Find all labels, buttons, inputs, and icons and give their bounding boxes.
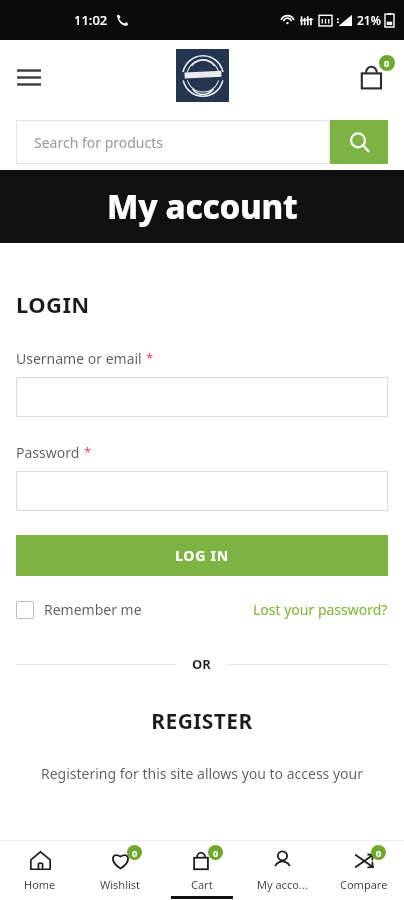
staticText: 0 (132, 847, 138, 859)
staticText: * (146, 349, 154, 367)
staticText: LOG IN (175, 546, 230, 565)
button[interactable]: Search for products (16, 120, 330, 164)
staticText: 0 (376, 847, 382, 859)
button[interactable]: My acco... (242, 841, 323, 900)
staticText: REGISTER (16, 707, 388, 736)
button[interactable]: Lost your password? (253, 598, 388, 621)
staticText: LOGIN (16, 289, 90, 319)
staticText: 21% (357, 12, 381, 28)
staticText: Wishlist (100, 877, 141, 892)
button[interactable]: Super Stores logo (176, 49, 229, 102)
staticText: Search for products (34, 133, 163, 152)
staticText: Password (16, 443, 80, 462)
staticText: OR (192, 655, 211, 673)
button[interactable]: 0 (80, 841, 161, 900)
button[interactable]: Cart (352, 57, 392, 97)
button[interactable] (16, 377, 388, 417)
staticText: * (84, 443, 92, 461)
button[interactable]: LOG IN (16, 535, 388, 576)
staticText: Lost your password? (253, 600, 388, 619)
staticText: Remember me (44, 600, 142, 619)
staticText: My account (107, 184, 298, 229)
button[interactable] (16, 471, 388, 511)
staticText: 0 (384, 57, 390, 69)
button[interactable]: Home (0, 841, 80, 900)
staticText: Cart (191, 877, 213, 892)
button[interactable]: Remember me (16, 598, 142, 621)
staticText: Registering for this site allows you to … (16, 764, 388, 783)
staticText: Username or email (16, 349, 142, 368)
staticText: 0 (213, 847, 219, 859)
staticText: Compare (340, 877, 388, 892)
button[interactable]: 0 (323, 841, 404, 900)
staticText: My acco... (257, 877, 308, 892)
button[interactable]: Search (330, 120, 388, 164)
button[interactable]: Menu (10, 58, 48, 96)
button[interactable]: 0 (161, 841, 242, 900)
staticText: 11:02 (74, 11, 108, 29)
staticText: Home (24, 877, 56, 892)
